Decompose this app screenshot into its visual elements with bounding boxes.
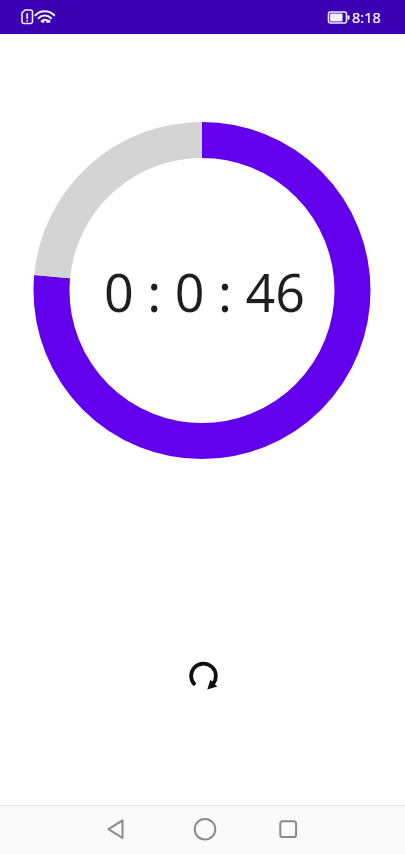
button[interactable]: [242, 805, 338, 854]
button[interactable]: [68, 805, 164, 854]
button[interactable]: [179, 651, 227, 699]
staticText: 0 : 0 : 46: [104, 256, 305, 327]
staticText: 8:18: [352, 7, 381, 27]
button[interactable]: [155, 805, 251, 854]
